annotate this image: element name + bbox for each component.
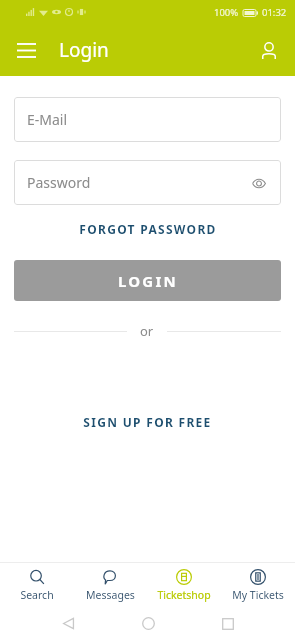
staticText: 01:32	[262, 6, 287, 19]
staticText: Messages	[86, 588, 135, 602]
button[interactable]: Search	[0, 563, 73, 607]
staticText: Ticketshop	[157, 588, 211, 602]
staticText: LOGIN	[118, 271, 178, 291]
button[interactable]: Ticketshop	[147, 563, 221, 607]
staticText: Password	[27, 173, 91, 192]
staticText: Login	[59, 37, 109, 63]
button[interactable]: Show password	[243, 167, 275, 199]
button[interactable]: Account	[248, 29, 290, 71]
button[interactable]: E-Mail	[14, 97, 281, 142]
staticText: E-Mail	[27, 110, 68, 129]
button[interactable]: Back	[41, 607, 95, 640]
staticText: 100%	[214, 6, 239, 19]
staticText: SIGN UP FOR FREE	[83, 414, 212, 430]
button[interactable]: SIGN UP FOR FREE	[0, 409, 295, 435]
button[interactable]: Recent apps	[201, 607, 255, 640]
staticText: Search	[20, 588, 54, 602]
staticText: FORGOT PASSWORD	[79, 221, 217, 237]
button[interactable]: My Tickets	[221, 563, 295, 607]
button[interactable]: FORGOT PASSWORD	[0, 216, 295, 242]
button[interactable]: Open navigation menu	[6, 30, 46, 70]
button[interactable]: LOGIN	[14, 260, 281, 301]
button[interactable]: Password	[14, 160, 281, 205]
staticText: My Tickets	[232, 588, 284, 602]
staticText: or	[140, 322, 154, 340]
button[interactable]: Messages	[73, 563, 147, 607]
button[interactable]: Home	[121, 607, 175, 640]
